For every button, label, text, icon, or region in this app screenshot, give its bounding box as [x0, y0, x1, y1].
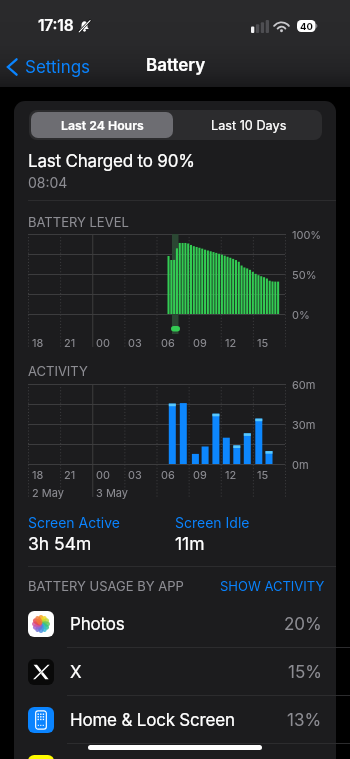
- staticText: 17:18: [38, 16, 74, 35]
- staticText: 3h 54m: [28, 533, 92, 554]
- staticText: 18: [32, 336, 44, 349]
- staticText: 100%: [292, 228, 322, 241]
- staticText: BATTERY LEVEL: [28, 214, 129, 230]
- staticText: Last 24 Hours: [61, 118, 144, 133]
- staticText: Screen Active: [28, 514, 120, 531]
- staticText: 13%: [287, 710, 322, 731]
- staticText: 0%: [292, 308, 310, 321]
- staticText: 0m: [292, 458, 309, 471]
- staticText: 40: [300, 21, 313, 32]
- staticText: 60m: [292, 378, 316, 391]
- staticText: 09: [193, 336, 207, 349]
- button[interactable]: SHOW ACTIVITY: [220, 574, 325, 592]
- staticText: Home & Lock Screen: [70, 710, 235, 731]
- staticText: ACTIVITY: [28, 363, 88, 379]
- staticText: 3 May: [96, 486, 129, 499]
- staticText: 50%: [292, 268, 317, 281]
- button[interactable]: Snapchat: [14, 744, 336, 759]
- staticText: 03: [128, 468, 142, 481]
- staticText: 06: [161, 468, 175, 481]
- staticText: 12: [225, 336, 237, 349]
- staticText: Screen Idle: [175, 514, 250, 531]
- staticText: 30m: [292, 418, 316, 431]
- staticText: 2 May: [32, 486, 64, 499]
- button[interactable]: Last 10 Days: [175, 110, 322, 140]
- staticText: 15%: [288, 662, 322, 683]
- staticText: Photos: [70, 614, 125, 635]
- button[interactable]: Last 24 Hours: [31, 112, 173, 138]
- staticText: Last 10 Days: [211, 118, 287, 133]
- staticText: 09: [193, 468, 207, 481]
- staticText: 00: [96, 336, 110, 349]
- button[interactable]: Home & Lock Screen: [14, 696, 336, 744]
- staticText: 06: [161, 336, 175, 349]
- staticText: 18: [32, 468, 44, 481]
- staticText: SHOW ACTIVITY: [220, 578, 325, 594]
- staticText: 15: [257, 336, 269, 349]
- staticText: 12: [225, 468, 237, 481]
- staticText: 21: [64, 468, 76, 481]
- button[interactable]: X: [14, 648, 336, 696]
- staticText: Settings: [25, 57, 91, 78]
- staticText: 11m: [175, 533, 205, 554]
- staticText: Battery: [146, 55, 206, 76]
- button[interactable]: Photos: [14, 600, 336, 648]
- staticText: 20%: [284, 614, 322, 635]
- staticText: BATTERY USAGE BY APP: [28, 578, 184, 594]
- staticText: 08:04: [28, 174, 68, 191]
- staticText: 00: [96, 468, 110, 481]
- staticText: X: [70, 662, 82, 683]
- staticText: 21: [64, 336, 76, 349]
- staticText: 15: [257, 468, 269, 481]
- staticText: 03: [128, 336, 142, 349]
- button[interactable]: Settings: [2, 53, 97, 81]
- staticText: Last Charged to 90%: [28, 151, 195, 172]
